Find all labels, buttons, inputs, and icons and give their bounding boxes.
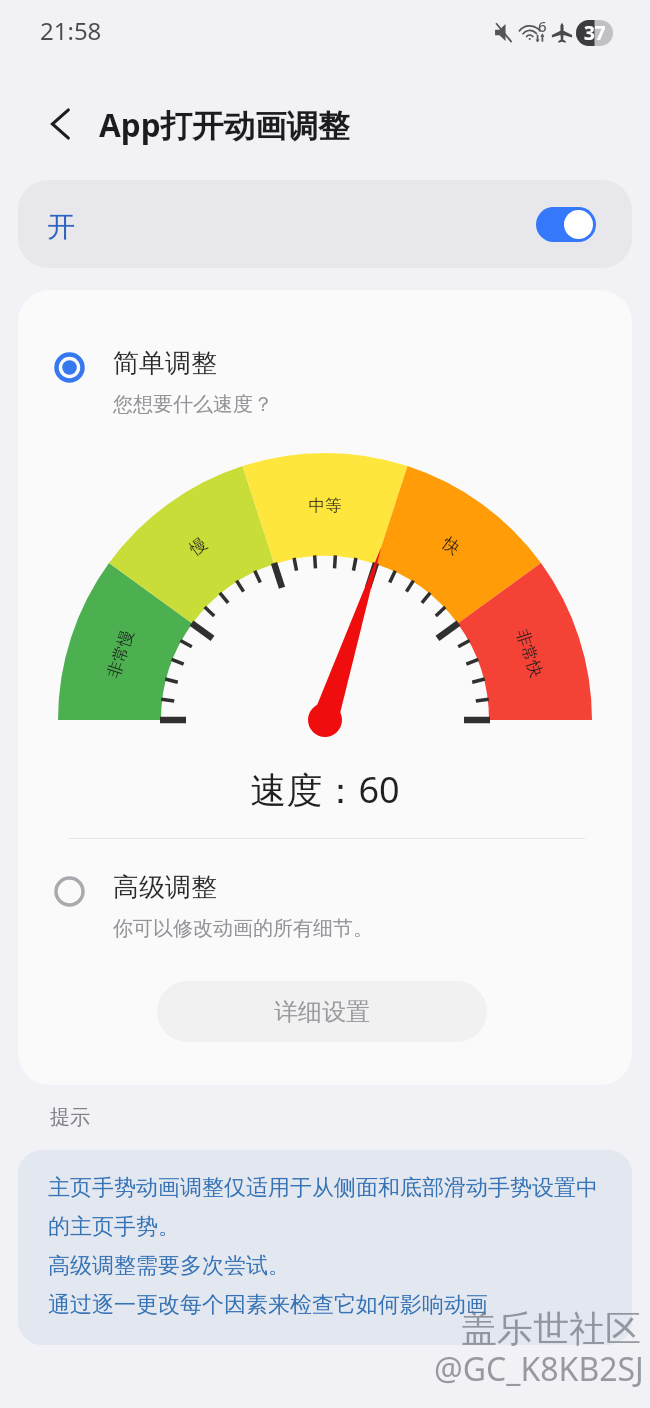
button[interactable]: Back	[42, 104, 82, 144]
staticText: 您想要什么速度？	[113, 392, 273, 417]
staticText: 你可以修改动画的所有细节。	[113, 916, 373, 941]
button[interactable]: 简单调整	[36, 330, 614, 420]
staticText: 速度：60	[18, 765, 632, 814]
staticText: 高级调整	[113, 871, 217, 904]
staticText: 主页手势动画调整仅适用于从侧面和底部滑动手势设置中 的主页手势。 高级调整需要多…	[48, 1174, 598, 1318]
button[interactable]: 详细设置	[157, 981, 487, 1042]
staticText: App打开动画调整	[99, 103, 350, 146]
button[interactable]: 开	[18, 180, 632, 268]
staticText: 37	[584, 20, 606, 46]
staticText: 6	[538, 16, 547, 36]
staticText: 简单调整	[113, 347, 217, 380]
staticText: 提示	[50, 1105, 90, 1130]
button[interactable]: 高级调整	[36, 854, 614, 944]
staticText: 详细设置	[274, 997, 370, 1027]
staticText: 21:58	[40, 14, 102, 47]
staticText: @GC_K8KB2SJ	[434, 1347, 644, 1391]
staticText: 开	[47, 209, 75, 244]
staticText: 盖乐世社区	[461, 1306, 641, 1351]
